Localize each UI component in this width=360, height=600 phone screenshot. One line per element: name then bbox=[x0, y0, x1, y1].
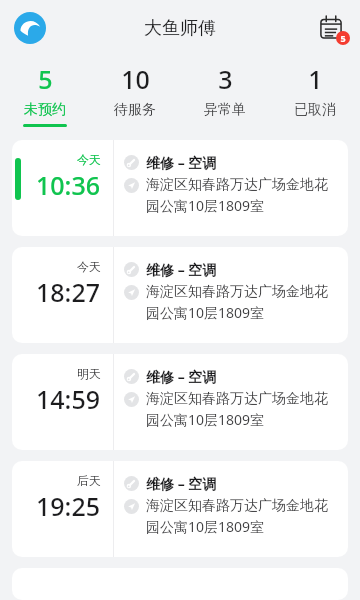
staticText: 已取消 bbox=[294, 101, 336, 119]
button[interactable]: 3 bbox=[180, 56, 270, 128]
button[interactable]: 明天 bbox=[12, 354, 348, 450]
button[interactable]: 后天 bbox=[12, 461, 348, 557]
staticText: 10 bbox=[121, 62, 150, 96]
staticText: 维修 – 空调 bbox=[146, 367, 217, 386]
staticText: 海淀区知春路万达广场金地花园公寓10层1809室 bbox=[146, 390, 338, 429]
staticText: 5 bbox=[38, 62, 53, 96]
staticText: 维修 – 空调 bbox=[146, 153, 217, 172]
staticText: 海淀区知春路万达广场金地花园公寓10层1809室 bbox=[146, 283, 338, 322]
staticText: 明天 bbox=[77, 366, 101, 381]
staticText: 5 bbox=[340, 32, 346, 44]
button[interactable]: 今天 bbox=[12, 140, 348, 236]
staticText: 异常单 bbox=[204, 101, 246, 119]
staticText: 未预约 bbox=[24, 101, 66, 119]
button[interactable]: 1 bbox=[270, 56, 360, 128]
staticText: 维修 – 空调 bbox=[146, 260, 217, 279]
staticText: 3 bbox=[218, 62, 233, 96]
staticText: 18:27 bbox=[36, 275, 101, 309]
staticText: 海淀区知春路万达广场金地花园公寓10层1809室 bbox=[146, 176, 338, 215]
staticText: 大鱼师傅 bbox=[144, 17, 216, 40]
button[interactable]: 今天 bbox=[12, 247, 348, 343]
button[interactable]: Schedule bbox=[314, 11, 348, 45]
staticText: 维修 – 空调 bbox=[146, 474, 217, 493]
staticText: 1 bbox=[308, 62, 323, 96]
button[interactable]: App logo bbox=[12, 10, 48, 46]
staticText: 海淀区知春路万达广场金地花园公寓10层1809室 bbox=[146, 497, 338, 536]
button[interactable]: 5 bbox=[0, 56, 90, 128]
staticText: 10:36 bbox=[36, 168, 101, 202]
staticText: 待服务 bbox=[114, 101, 156, 119]
staticText: 今天 bbox=[77, 259, 101, 274]
staticText: 14:59 bbox=[36, 382, 101, 416]
staticText: 19:25 bbox=[36, 489, 101, 523]
button[interactable]: 10 bbox=[90, 56, 180, 128]
staticText: 后天 bbox=[77, 473, 101, 488]
staticText: 今天 bbox=[77, 152, 101, 167]
